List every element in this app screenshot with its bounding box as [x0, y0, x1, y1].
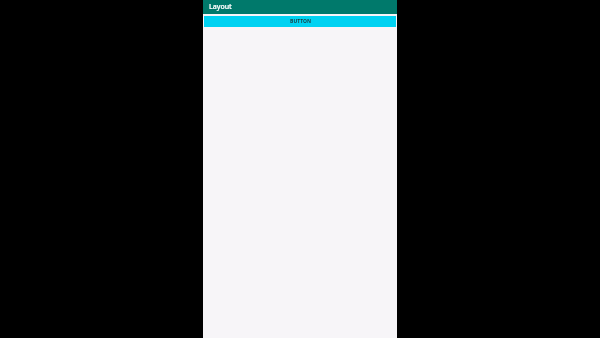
button[interactable]: BUTTON: [204, 16, 396, 27]
button[interactable]: Layout: [203, 0, 397, 14]
staticText: Layout: [209, 2, 232, 12]
staticText: BUTTON: [290, 18, 311, 25]
